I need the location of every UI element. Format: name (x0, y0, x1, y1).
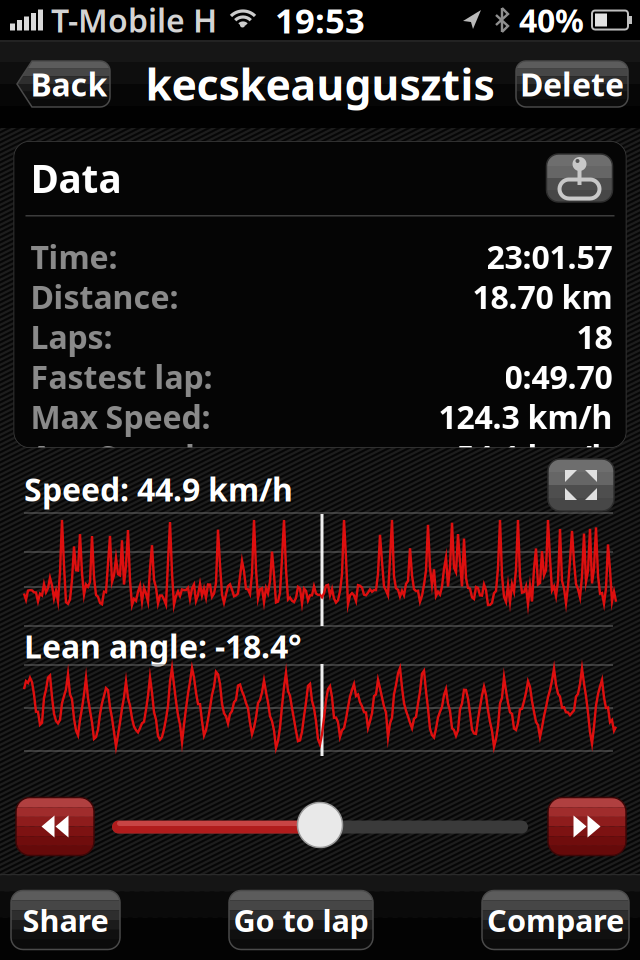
button[interactable]: Expand chart (548, 459, 614, 511)
staticText: Go to lap (233, 900, 368, 940)
staticText: Distance: (30, 275, 178, 318)
staticText: 18 (576, 315, 612, 358)
button[interactable]: Back (16, 61, 110, 107)
staticText: 54.1 km/h (456, 435, 612, 478)
button[interactable]: Go to lap (229, 890, 373, 949)
staticText: 40% (519, 0, 584, 41)
staticText: 0:49.70 (504, 355, 612, 398)
button[interactable]: Rewind (16, 797, 94, 855)
staticText: Time: (30, 235, 117, 278)
button[interactable]: Share (11, 890, 120, 949)
staticText: 18.70 km (472, 275, 612, 318)
staticText: 23:01.57 (486, 235, 612, 278)
staticText: Max Speed: (30, 395, 210, 438)
staticText: Speed: 44.9 km/h (24, 468, 293, 510)
button[interactable]: Show on map (546, 154, 612, 202)
staticText: Fastest lap: (30, 355, 212, 398)
button[interactable]: Fast forward (548, 797, 626, 855)
staticText: 124.3 km/h (438, 395, 612, 438)
staticText: T-Mobile H (51, 0, 217, 41)
button[interactable]: Compare (482, 890, 629, 949)
staticText: Back (30, 63, 107, 105)
staticText: Data (30, 152, 121, 204)
button[interactable]: Playback position (297, 802, 342, 847)
staticText: Delete (520, 63, 624, 105)
staticText: kecskeaugusztis (145, 56, 494, 112)
staticText: Compare (487, 900, 624, 940)
staticText: Lean angle: -18.4° (24, 625, 302, 667)
button[interactable]: Delete (516, 61, 628, 107)
staticText: Avg Speed: (30, 435, 203, 478)
staticText: 19:53 (275, 0, 365, 43)
staticText: Share (22, 900, 108, 940)
staticText: Laps: (30, 315, 112, 358)
